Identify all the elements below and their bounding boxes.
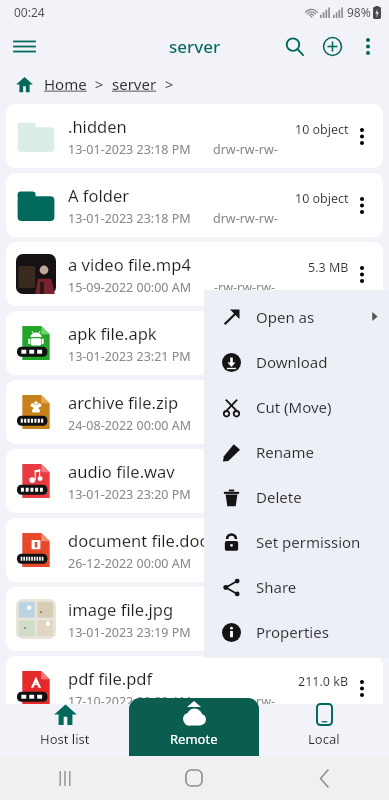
button[interactable]: .hidden	[6, 104, 383, 168]
staticText: 24-08-2022 00:00 AM	[68, 417, 192, 434]
button[interactable]: More options for pdf file.pdf	[349, 656, 375, 720]
staticText: 5.3 MB	[308, 259, 349, 276]
staticText: Set permission	[256, 532, 361, 552]
button[interactable]: Remote	[129, 698, 259, 756]
button[interactable]: audio file.wav	[6, 449, 383, 513]
staticText: drw-rw-rw-	[213, 210, 278, 227]
staticText: apk file.apk	[68, 322, 157, 344]
staticText: >	[87, 74, 112, 94]
button[interactable]: Rename	[204, 429, 389, 474]
staticText: document file.docx	[68, 529, 217, 551]
button[interactable]: server	[112, 74, 157, 94]
staticText: 98%	[347, 4, 371, 20]
staticText: 10 object	[295, 121, 349, 138]
staticText: a video file.mp4	[68, 253, 191, 275]
button[interactable]: Open as	[204, 294, 389, 339]
staticText: 15-09-2022 00:00 AM	[68, 279, 192, 296]
staticText: server	[169, 35, 221, 58]
button[interactable]: Share	[204, 564, 389, 609]
staticText: .hidden	[68, 115, 127, 137]
staticText: pdf file.pdf	[68, 667, 153, 689]
staticText: 13-01-2023 23:21 PM	[68, 348, 191, 365]
button[interactable]: More options for document file.docx	[349, 518, 375, 582]
staticText: -rw-rw-rw-	[214, 693, 276, 710]
staticText: 00:24	[14, 4, 45, 20]
button[interactable]: a video file.mp4	[6, 242, 383, 306]
button[interactable]: Delete	[204, 474, 389, 519]
button[interactable]: Home	[129, 756, 259, 800]
staticText: 13-01-2023 23:18 PM	[68, 141, 191, 158]
button[interactable]: More options for a video file.mp4	[349, 242, 375, 306]
staticText: Remote	[170, 730, 218, 748]
button[interactable]: Home	[44, 74, 87, 94]
staticText: Rename	[256, 442, 314, 462]
staticText: audio file.wav	[68, 460, 175, 482]
staticText: Local	[308, 730, 340, 748]
staticText: 10 object	[295, 190, 349, 207]
button[interactable]: Add	[313, 27, 351, 65]
staticText: >	[157, 74, 174, 94]
staticText: Home	[44, 74, 87, 94]
button[interactable]: A folder	[6, 173, 383, 237]
staticText: archive file.zip	[68, 391, 179, 413]
staticText: 17-10-2022 00:00 AM	[68, 693, 192, 710]
staticText: 13-01-2023 23:20 PM	[68, 486, 191, 503]
button[interactable]: Local	[259, 698, 389, 756]
button[interactable]: image file.jpg	[6, 587, 383, 651]
button[interactable]: More options	[351, 29, 385, 63]
button[interactable]: archive file.zip	[6, 380, 383, 444]
staticText: 211.0 kB	[298, 673, 349, 690]
button[interactable]: More options for A folder	[349, 173, 375, 237]
staticText: Host list	[40, 730, 90, 748]
button[interactable]: Navigation drawer	[4, 26, 44, 66]
button[interactable]: Download	[204, 339, 389, 384]
button[interactable]: Cut (Move)	[204, 384, 389, 429]
button[interactable]: More options for .hidden	[349, 104, 375, 168]
staticText: 13-01-2023 23:19 PM	[68, 624, 191, 641]
staticText: A folder	[68, 184, 130, 206]
staticText: Share	[256, 577, 297, 597]
staticText: image file.jpg	[68, 598, 174, 620]
staticText: server	[112, 74, 157, 94]
button[interactable]: apk file.apk	[6, 311, 383, 375]
button[interactable]: pdf file.pdf	[6, 656, 383, 720]
button[interactable]: Set permission	[204, 519, 389, 564]
button[interactable]: More options for apk file.apk	[349, 311, 375, 375]
staticText: Properties	[256, 622, 329, 642]
staticText: 13-01-2023 23:18 PM	[68, 210, 191, 227]
staticText: 26-12-2022 00:00 AM	[68, 555, 192, 572]
button[interactable]: document file.docx	[6, 518, 383, 582]
button[interactable]: Back	[259, 756, 389, 800]
button[interactable]: Home	[10, 70, 38, 98]
button[interactable]: Host list	[0, 698, 129, 756]
staticText: Open as	[256, 307, 315, 327]
staticText: Download	[256, 352, 328, 372]
staticText: -rw-rw-rw-	[214, 279, 276, 296]
button[interactable]: Properties	[204, 609, 389, 654]
staticText: Cut (Move)	[256, 397, 332, 417]
button[interactable]: Recent apps	[0, 756, 129, 800]
staticText: Delete	[256, 487, 302, 507]
button[interactable]: Search	[275, 27, 313, 65]
staticText: drw-rw-rw-	[213, 141, 278, 158]
